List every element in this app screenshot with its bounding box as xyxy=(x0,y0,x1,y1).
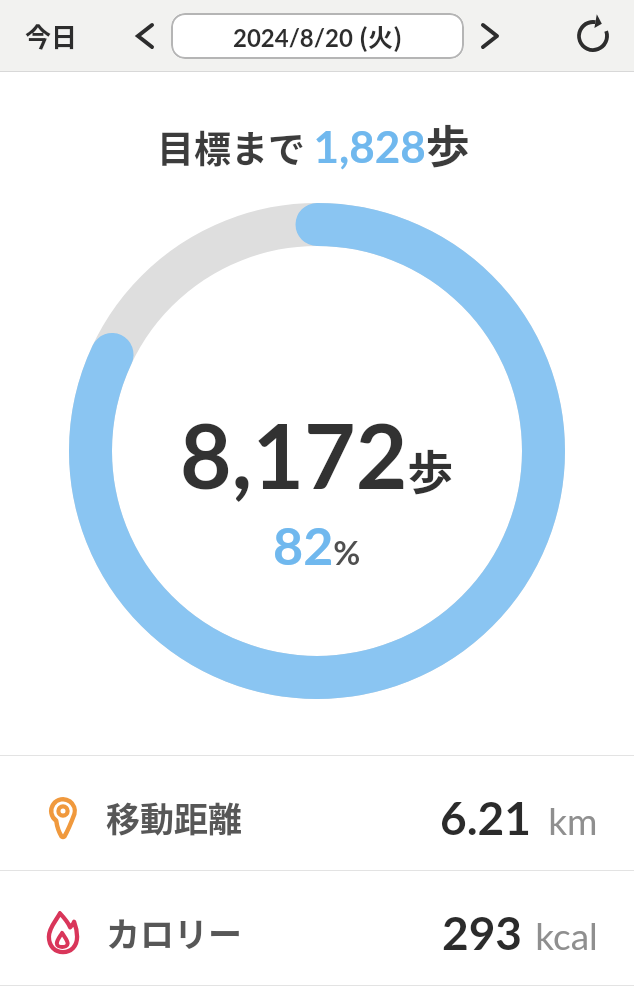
button[interactable]: 移動距離 xyxy=(0,756,634,870)
staticText: カロリー xyxy=(106,908,242,957)
staticText: 8,172歩 xyxy=(180,401,454,508)
staticText: 今日 xyxy=(25,17,78,55)
button[interactable] xyxy=(573,16,613,56)
button[interactable]: 2024/8/20 (火) xyxy=(171,13,464,59)
staticText: 82% xyxy=(273,514,361,576)
button[interactable]: 今日 xyxy=(18,10,85,62)
button[interactable] xyxy=(473,19,507,53)
button[interactable] xyxy=(128,19,162,53)
staticText: 6.21 km xyxy=(440,790,598,845)
staticText: 目標まで 1,828歩 xyxy=(157,112,470,176)
button[interactable]: カロリー xyxy=(0,871,634,985)
staticText: 2024/8/20 (火) xyxy=(233,18,403,54)
staticText: 293 kcal xyxy=(442,905,598,960)
staticText: 移動距離 xyxy=(106,793,242,842)
